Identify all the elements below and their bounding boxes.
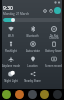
staticText: 9:30 bbox=[3, 5, 13, 12]
button[interactable]: Do Not Disturb bbox=[43, 25, 64, 40]
button[interactable]: Bluetooth bbox=[22, 25, 43, 40]
button[interactable]: Nearby Share bbox=[22, 70, 43, 85]
button[interactable]: Wi-Fi bbox=[0, 25, 22, 40]
staticText: Nearby Share bbox=[24, 79, 41, 83]
button[interactable]: Screen record bbox=[43, 55, 64, 70]
button[interactable]: Flashlight bbox=[0, 40, 22, 55]
button[interactable]: Auto-rotate bbox=[22, 40, 43, 55]
button[interactable]: App bbox=[2, 90, 11, 99]
staticText: Monday, 21 March bbox=[3, 12, 30, 16]
button[interactable]: Settings bbox=[42, 8, 48, 14]
button[interactable]: App bbox=[40, 90, 49, 99]
staticText: Battery Saver bbox=[45, 49, 62, 53]
button[interactable]: App bbox=[15, 90, 24, 99]
button[interactable]: Location bbox=[22, 55, 43, 70]
button[interactable]: App bbox=[53, 90, 62, 99]
staticText: Flashlight bbox=[5, 49, 17, 53]
staticText: Bluetooth bbox=[26, 34, 39, 38]
button[interactable]: Night Light bbox=[0, 70, 22, 85]
button[interactable]: Power bbox=[48, 8, 54, 14]
staticText: Auto-rotate bbox=[26, 49, 40, 53]
staticText: Location bbox=[27, 64, 38, 68]
button[interactable]: Account bbox=[54, 7, 61, 14]
button[interactable] bbox=[43, 70, 64, 85]
button[interactable]: Battery Saver bbox=[43, 40, 64, 55]
staticText: Do Not Disturb bbox=[49, 34, 59, 40]
staticText: Night Light bbox=[4, 79, 18, 83]
staticText: Airplane mode bbox=[2, 64, 20, 68]
button[interactable]: Brightness bbox=[3, 18, 61, 22]
button[interactable]: App bbox=[28, 90, 37, 99]
staticText: Wi-Fi bbox=[8, 34, 14, 38]
button[interactable]: Airplane mode bbox=[0, 55, 22, 70]
staticText: Screen record bbox=[45, 64, 62, 68]
